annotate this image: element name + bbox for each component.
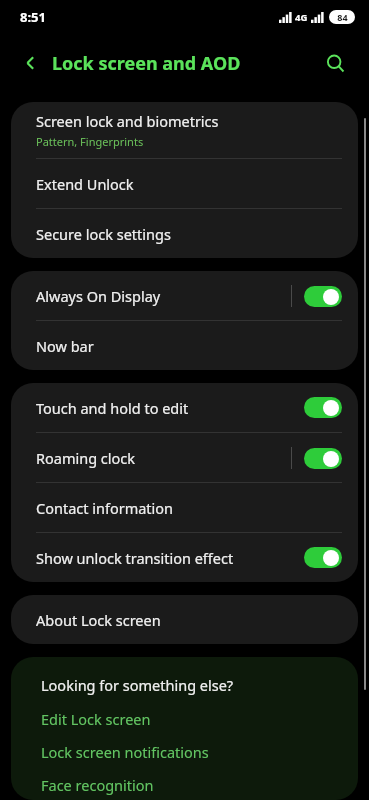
- staticText: Looking for something else?: [41, 675, 234, 695]
- button[interactable]: About Lock screen: [11, 595, 358, 644]
- button[interactable]: Back: [14, 46, 48, 80]
- button[interactable]: Toggle Show unlock transition effect: [304, 547, 342, 568]
- button[interactable]: Toggle Touch and hold to edit: [304, 397, 342, 418]
- staticText: Roaming clock: [36, 448, 136, 468]
- staticText: 84: [337, 11, 348, 23]
- button[interactable]: Face recognition: [11, 773, 358, 797]
- button[interactable]: Extend Unlock: [11, 159, 358, 208]
- staticText: Contact information: [36, 498, 174, 518]
- staticText: Face recognition: [41, 775, 154, 795]
- button[interactable]: Show unlock transition effect: [11, 533, 358, 582]
- button[interactable]: Contact information: [11, 483, 358, 532]
- button[interactable]: Edit Lock screen: [11, 707, 358, 731]
- button[interactable]: Toggle Always On Display: [304, 286, 342, 307]
- staticText: About Lock screen: [36, 610, 161, 630]
- staticText: Lock screen notifications: [41, 742, 209, 762]
- button[interactable]: Touch and hold to edit: [11, 383, 358, 432]
- staticText: Extend Unlock: [36, 174, 134, 194]
- staticText: Show unlock transition effect: [36, 548, 234, 568]
- staticText: Pattern, Fingerprints: [36, 134, 144, 149]
- button[interactable]: Toggle Roaming clock: [304, 448, 342, 469]
- button[interactable]: Now bar: [11, 321, 358, 370]
- staticText: Always On Display: [36, 286, 161, 306]
- staticText: Lock screen and AOD: [52, 51, 241, 76]
- staticText: 8:51: [20, 8, 46, 26]
- staticText: Secure lock settings: [36, 224, 171, 244]
- staticText: Screen lock and biometrics: [36, 111, 219, 131]
- staticText: 4G: [295, 11, 308, 24]
- button[interactable]: Always On Display: [11, 271, 358, 320]
- button[interactable]: Secure lock settings: [11, 209, 358, 258]
- staticText: Now bar: [36, 336, 94, 356]
- button[interactable]: Search: [319, 47, 351, 79]
- button[interactable]: Roaming clock: [11, 433, 358, 482]
- button[interactable]: Lock screen notifications: [11, 740, 358, 764]
- button[interactable]: Screen lock and biometrics: [11, 102, 358, 158]
- staticText: Edit Lock screen: [41, 709, 151, 729]
- staticText: Touch and hold to edit: [36, 398, 189, 418]
